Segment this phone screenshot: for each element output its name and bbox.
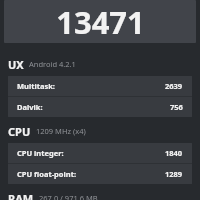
staticText: Multitask: [17,81,55,91]
button[interactable]: CPU float-point: [8,164,192,184]
staticText: CPU [8,124,31,139]
staticText: 1289 [165,169,183,179]
staticText: Dalvik: [17,102,43,112]
staticText: CPU float-point: [17,169,77,179]
button[interactable]: 13471 [4,0,196,43]
staticText: RAM [8,191,34,200]
button[interactable]: CPU integer: [8,143,192,163]
staticText: 1840 [165,148,183,158]
button[interactable]: Multitask: [8,76,192,96]
staticText: 13471 [56,1,145,43]
staticText: 1209 MHz (x4) [36,126,86,136]
staticText: Android 4.2.1 [29,59,76,69]
button[interactable]: Dalvik: [8,97,192,117]
staticText: 267.0 / 971.6 MB [39,193,98,200]
staticText: 756 [170,102,183,112]
staticText: UX [8,57,24,72]
staticText: CPU integer: [17,148,64,158]
staticText: 2639 [165,81,183,91]
